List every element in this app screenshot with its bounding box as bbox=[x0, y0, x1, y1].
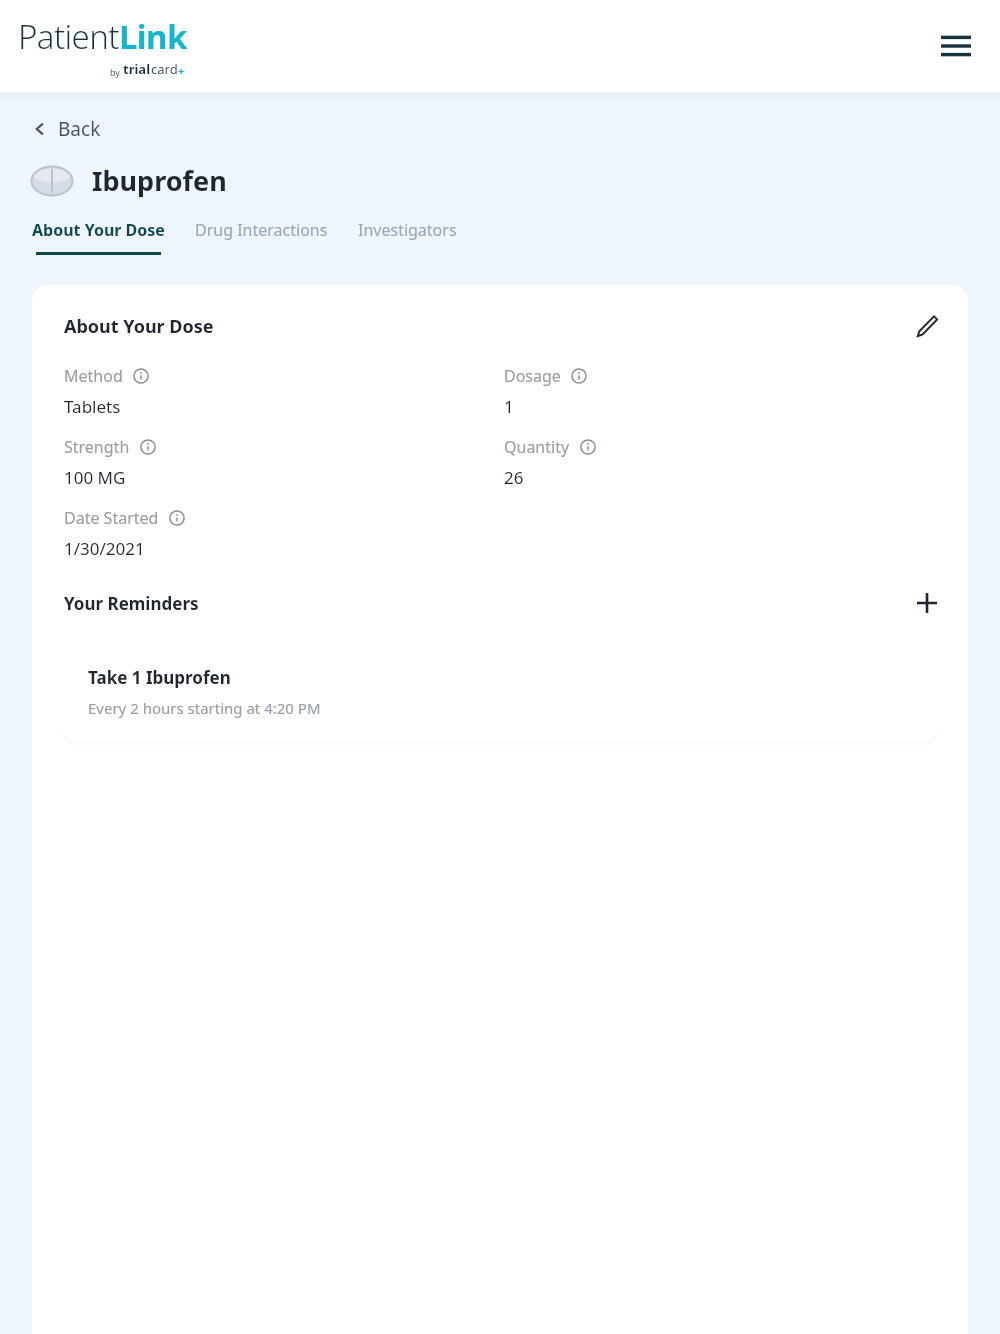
staticText: Ibuprofen bbox=[92, 162, 227, 199]
staticText: Every 2 hours starting at 4:20 PM bbox=[88, 698, 321, 718]
staticText: About Your Dose bbox=[32, 219, 165, 241]
staticText: Link bbox=[119, 14, 187, 59]
button[interactable]: Dosage info bbox=[569, 366, 589, 386]
staticText: Dosage bbox=[504, 365, 561, 387]
staticText: Your Reminders bbox=[64, 592, 199, 615]
staticText: Investigators bbox=[358, 219, 457, 241]
staticText: Back bbox=[58, 116, 101, 142]
staticText: Take 1 Ibuprofen bbox=[88, 666, 231, 689]
staticText: 100 MG bbox=[64, 466, 126, 489]
staticText: 1 bbox=[504, 395, 514, 418]
button[interactable]: Strength info bbox=[138, 437, 158, 457]
button[interactable]: About Your Dose bbox=[32, 219, 165, 255]
staticText: Drug Interactions bbox=[195, 219, 328, 241]
button[interactable]: Open menu bbox=[930, 20, 982, 72]
button[interactable]: Method info bbox=[131, 366, 151, 386]
staticText: Date Started bbox=[64, 507, 159, 529]
button[interactable]: Quantity info bbox=[578, 437, 598, 457]
staticText: Method bbox=[64, 365, 123, 387]
button[interactable]: Add reminder bbox=[908, 584, 946, 622]
button[interactable]: Date Started info bbox=[167, 508, 187, 528]
staticText: Strength bbox=[64, 436, 130, 458]
button[interactable]: Take 1 Ibuprofen bbox=[62, 640, 938, 741]
staticText: Tablets bbox=[64, 395, 121, 418]
button[interactable]: Back bbox=[24, 110, 109, 148]
staticText: 1/30/2021 bbox=[64, 537, 145, 560]
button[interactable]: Drug Interactions bbox=[195, 219, 328, 241]
staticText: trial bbox=[123, 60, 151, 78]
staticText: + bbox=[178, 63, 185, 78]
button[interactable]: Investigators bbox=[358, 219, 457, 241]
staticText: by bbox=[110, 66, 123, 78]
staticText: 26 bbox=[504, 466, 524, 489]
staticText: card bbox=[151, 60, 178, 78]
staticText: Patient bbox=[18, 14, 119, 59]
button[interactable]: Edit dose bbox=[908, 307, 946, 345]
staticText: About Your Dose bbox=[64, 314, 214, 339]
staticText: Quantity bbox=[504, 436, 570, 458]
